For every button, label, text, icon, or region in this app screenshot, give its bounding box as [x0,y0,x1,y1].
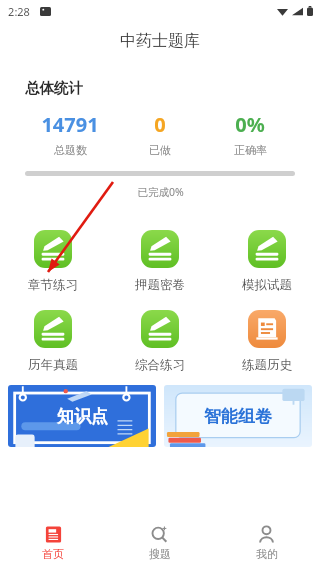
staticText: 首页 [42,547,64,561]
staticText: 历年真题 [28,357,78,373]
button[interactable]: 首页 [0,521,106,565]
staticText: 0 [154,111,166,138]
other: 首页 [44,525,63,544]
staticText: 14791 [41,111,99,138]
staticText: 正确率 [234,143,267,157]
staticText: 已做 [149,143,171,157]
staticText: 0% [235,111,265,138]
staticText: 综合练习 [135,357,185,373]
staticText: 知识点 [57,406,108,427]
button[interactable]: 练题历史 [213,308,320,375]
staticText: 已完成0% [137,185,184,199]
button[interactable]: 综合练习 [106,308,213,375]
button[interactable]: 历年真题 [0,308,106,375]
staticText: 总体统计 [25,79,83,97]
button[interactable]: 搜题 [106,521,213,565]
other: 我的 [257,525,276,544]
button[interactable]: 押题密卷 [106,228,213,295]
other: 搜题 [150,525,169,544]
staticText: 练题历史 [242,357,292,373]
staticText: 总题数 [54,143,87,157]
staticText: 2:28 [8,4,30,19]
staticText: 智能组卷 [204,406,272,427]
button[interactable]: 知识点 [8,385,156,447]
staticText: 模拟试题 [242,277,292,293]
button[interactable]: 模拟试题 [213,228,320,295]
staticText: 中药士题库 [120,31,200,51]
button[interactable]: 我的 [213,521,320,565]
staticText: 我的 [256,547,278,561]
staticText: 押题密卷 [135,277,185,293]
staticText: 搜题 [149,547,171,561]
staticText: 章节练习 [28,277,78,293]
button[interactable]: 智能组卷 [164,385,312,447]
button[interactable]: 章节练习 [0,228,106,295]
